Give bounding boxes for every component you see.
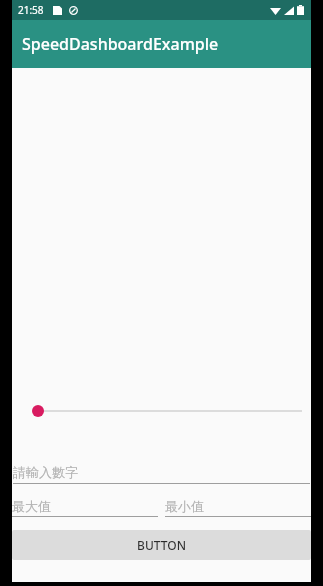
staticText: BUTTON [137,537,186,553]
staticText: 21:58 [18,3,44,17]
button[interactable]: 最大值 [12,496,158,517]
staticText: 請輸入數字 [13,464,78,480]
staticText: SpeedDashboardExample [22,33,219,55]
button[interactable]: 請輸入數字 [13,461,310,484]
staticText: 最大值 [12,498,51,514]
button[interactable] [12,393,311,429]
staticText: 最小值 [165,498,204,514]
button[interactable]: 最小值 [165,496,311,517]
button[interactable]: BUTTON [12,530,311,560]
